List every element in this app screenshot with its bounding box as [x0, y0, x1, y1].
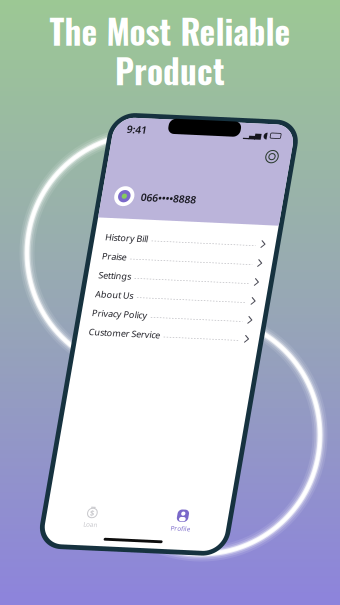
staticText: Praise: [128, 257, 154, 269]
staticText: Product: [115, 45, 225, 95]
button[interactable]: Privacy Policy: [117, 313, 307, 333]
button[interactable]: Account settings: [280, 143, 295, 158]
button[interactable]: Settings: [117, 273, 307, 293]
staticText: ▁▃▅: [254, 124, 272, 134]
button[interactable]: About Us: [117, 293, 307, 313]
button[interactable]: Profile: [212, 524, 307, 549]
button[interactable]: Praise: [117, 253, 307, 273]
button[interactable]: Customer Service: [117, 333, 307, 353]
staticText: The Most Reliable: [49, 6, 290, 55]
button[interactable]: History Bill: [117, 233, 307, 253]
staticText: 066••••8888: [158, 192, 216, 207]
staticText: 9:41: [131, 122, 152, 136]
staticText: Customer Service: [128, 337, 203, 349]
staticText: ◖: [274, 124, 279, 134]
staticText: Privacy Policy: [128, 317, 186, 329]
staticText: History Bill: [128, 237, 173, 249]
button[interactable]: $: [117, 524, 212, 549]
staticText: Settings: [128, 277, 162, 289]
staticText: Loan: [157, 540, 172, 549]
staticText: Profile: [249, 540, 270, 549]
staticText: About Us: [128, 297, 168, 309]
